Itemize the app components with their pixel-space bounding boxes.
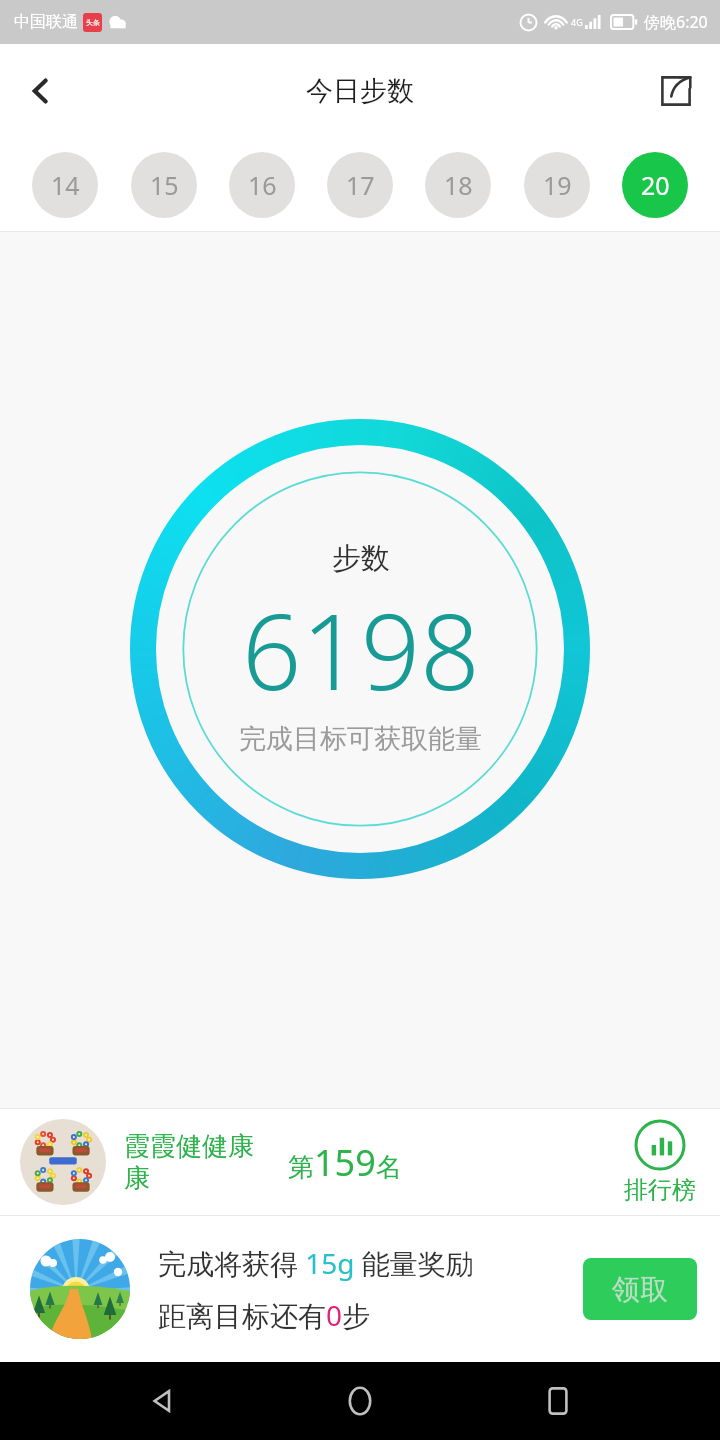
button[interactable]: 17 — [327, 152, 393, 218]
button[interactable]: 18 — [425, 152, 491, 218]
staticText: 15 — [150, 168, 179, 202]
staticText: 14 — [51, 168, 80, 202]
button[interactable]: 16 — [229, 152, 295, 218]
staticText: 霞霞健健康康 — [124, 1130, 274, 1195]
staticText: 距离目标还有0步 — [158, 1296, 371, 1334]
button[interactable]: 19 — [524, 152, 590, 218]
button[interactable]: 领取 — [583, 1258, 697, 1320]
staticText: 排行榜 — [624, 1175, 696, 1205]
staticText: 今日步数 — [306, 74, 414, 108]
staticText: 20 — [641, 168, 670, 202]
button[interactable]: 20 — [622, 152, 688, 218]
staticText: 17 — [346, 168, 375, 202]
button[interactable]: 霞霞健健康康 — [0, 1109, 720, 1215]
staticText: 完成将获得 15g 能量奖励 — [158, 1244, 474, 1282]
staticText: 6198 — [242, 579, 480, 721]
button[interactable]: 15 — [131, 152, 197, 218]
staticText: 完成目标可获取能量 — [239, 722, 482, 756]
staticText: 步数 — [332, 540, 390, 577]
button[interactable]: 排行榜 — [624, 1119, 696, 1205]
staticText: 领取 — [612, 1272, 668, 1307]
staticText: 18 — [444, 168, 473, 202]
staticText: 头条 — [86, 18, 100, 27]
button[interactable]: Recent apps — [523, 1366, 593, 1436]
staticText: 中国联通 — [14, 12, 78, 32]
staticText: 19 — [543, 168, 572, 202]
button[interactable]: Back — [128, 1366, 198, 1436]
staticText: 4G — [571, 16, 583, 28]
staticText: 第159名 — [288, 1138, 402, 1187]
button[interactable]: 14 — [32, 152, 98, 218]
staticText: 16 — [248, 168, 277, 202]
button[interactable]: Home — [325, 1366, 395, 1436]
button[interactable]: Back — [10, 60, 72, 122]
button[interactable]: Share — [646, 61, 706, 121]
staticText: 傍晚6:20 — [644, 11, 708, 33]
